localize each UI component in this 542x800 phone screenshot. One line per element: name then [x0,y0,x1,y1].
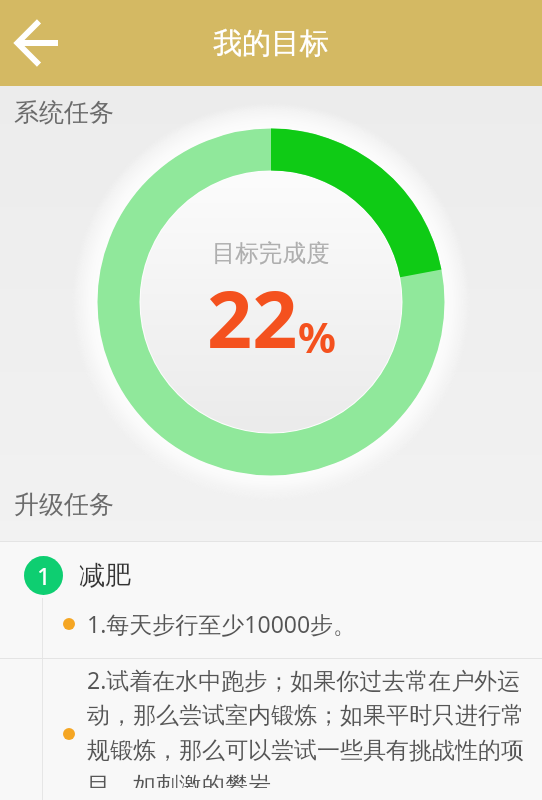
button[interactable]: Back [0,0,72,86]
staticText: 升级任务 [14,489,114,520]
staticText: 我的目标 [213,25,329,62]
button[interactable]: 1.每天步行至少10000步。 [0,602,542,658]
staticText: 22 [207,264,298,372]
button[interactable]: 2.试着在水中跑步；如果你过去常在户外运动，那么尝试室内锻炼；如果平时只进行常规… [0,659,542,800]
staticText: 减肥 [79,559,131,592]
staticText: 2.试着在水中跑步；如果你过去常在户外运动，那么尝试室内锻炼；如果平时只进行常规… [87,664,527,788]
staticText: 目标完成度 [212,238,330,268]
staticText: 1 [37,559,51,592]
staticText: % [298,308,336,365]
button[interactable]: 1 [0,542,542,602]
staticText: 系统任务 [14,97,114,128]
staticText: 1.每天步行至少10000步。 [87,608,357,639]
